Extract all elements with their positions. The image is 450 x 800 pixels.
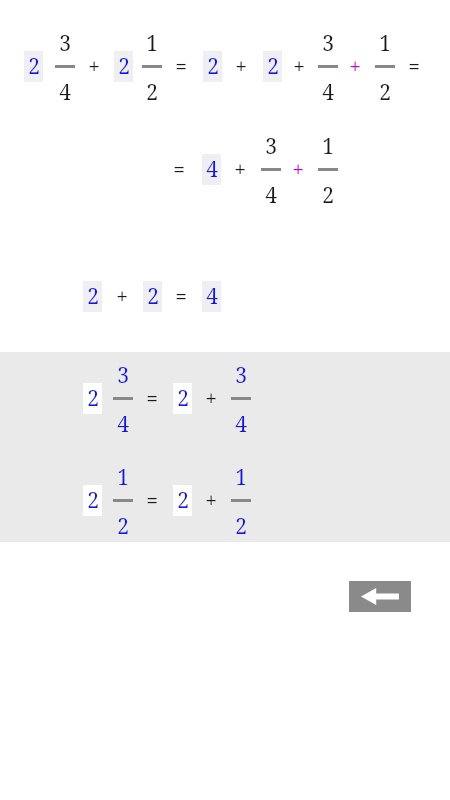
staticText: + xyxy=(234,155,246,184)
staticText: 1 xyxy=(322,132,334,161)
button[interactable]: 2 xyxy=(143,281,162,312)
staticText: 4 xyxy=(117,410,129,439)
button[interactable]: 2 xyxy=(83,281,102,312)
button[interactable]: 2 xyxy=(83,485,102,516)
staticText: 2 xyxy=(207,52,219,81)
staticText: 4 xyxy=(59,78,71,107)
staticText: 2 xyxy=(177,384,189,413)
staticText: 2 xyxy=(379,78,391,107)
staticText: 4 xyxy=(322,78,334,107)
button[interactable]: 2 xyxy=(24,51,43,82)
staticText: 2 xyxy=(118,52,130,81)
staticText: 4 xyxy=(235,410,247,439)
staticText: + xyxy=(88,52,100,81)
staticText: 2 xyxy=(87,384,99,413)
button[interactable]: 4 xyxy=(202,281,221,312)
staticText: = xyxy=(173,155,185,184)
staticText: = xyxy=(146,486,158,515)
staticText: = xyxy=(146,384,158,413)
staticText: 2 xyxy=(117,512,129,541)
staticText: 2 xyxy=(267,52,279,81)
staticText: + xyxy=(205,384,217,413)
staticText: + xyxy=(116,282,128,311)
staticText: 2 xyxy=(235,512,247,541)
staticText: 2 xyxy=(147,282,159,311)
button[interactable]: 2 xyxy=(114,51,133,82)
staticText: 2 xyxy=(87,282,99,311)
staticText: 2 xyxy=(28,52,40,81)
staticText: 3 xyxy=(322,29,334,58)
staticText: 3 xyxy=(59,29,71,58)
staticText: 1 xyxy=(379,29,391,58)
staticText: 2 xyxy=(146,78,158,107)
button[interactable]: 2 xyxy=(203,51,222,82)
staticText: = xyxy=(175,282,187,311)
staticText: 1 xyxy=(117,463,129,492)
staticText: 3 xyxy=(265,132,277,161)
staticText: = xyxy=(175,52,187,81)
staticText: 1 xyxy=(235,463,247,492)
staticText: 3 xyxy=(235,361,247,390)
button[interactable]: 2 xyxy=(83,383,102,414)
staticText: + xyxy=(292,155,304,184)
staticText: + xyxy=(205,486,217,515)
button[interactable]: 2 xyxy=(173,383,192,414)
staticText: = xyxy=(408,52,420,81)
staticText: 2 xyxy=(322,181,334,210)
staticText: + xyxy=(349,52,361,81)
staticText: 2 xyxy=(177,486,189,515)
button[interactable]: 4 xyxy=(202,154,221,185)
button[interactable]: 2 xyxy=(263,51,282,82)
staticText: 1 xyxy=(146,29,158,58)
staticText: + xyxy=(235,52,247,81)
button[interactable]: Back xyxy=(349,581,411,612)
staticText: + xyxy=(293,52,305,81)
staticText: 3 xyxy=(117,361,129,390)
button[interactable]: 2 xyxy=(173,485,192,516)
staticText: 4 xyxy=(265,181,277,210)
staticText: 2 xyxy=(87,486,99,515)
staticText: 4 xyxy=(206,282,218,311)
staticText: 4 xyxy=(206,155,218,184)
